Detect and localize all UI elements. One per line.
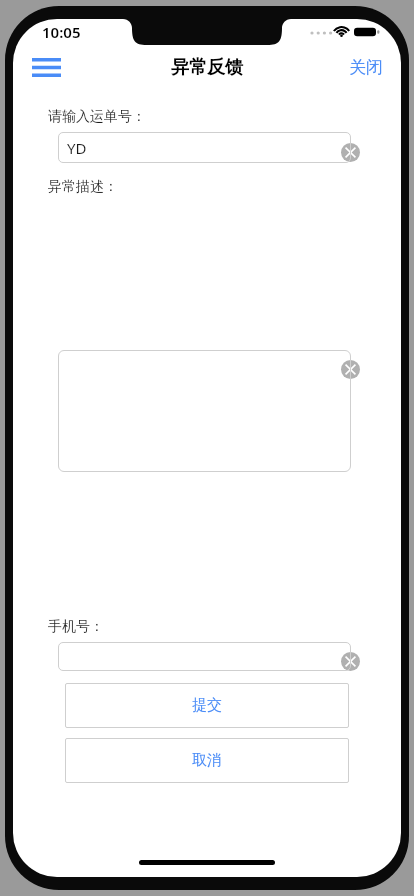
staticText: 提交	[192, 696, 222, 715]
staticText: 异常描述：	[48, 178, 118, 196]
button[interactable]: YD	[58, 132, 351, 163]
staticText: 取消	[192, 751, 222, 770]
button[interactable]: Clear text	[58, 350, 351, 472]
button[interactable]: 关闭	[345, 53, 387, 82]
button[interactable]: Clear text	[341, 143, 360, 162]
button[interactable]: 取消	[65, 738, 349, 783]
staticText: 10:05	[42, 22, 81, 42]
button[interactable]: Clear text	[58, 642, 351, 671]
staticText: 请输入运单号：	[48, 108, 146, 126]
staticText: 关闭	[349, 57, 383, 78]
button[interactable]: 提交	[65, 683, 349, 728]
staticText: 异常反馈	[171, 56, 243, 79]
button[interactable]: Menu	[30, 54, 62, 80]
button[interactable]: Clear text	[341, 652, 360, 671]
button[interactable]: Clear text	[341, 360, 360, 379]
staticText: 手机号：	[48, 618, 104, 636]
staticText: YD	[67, 138, 87, 158]
